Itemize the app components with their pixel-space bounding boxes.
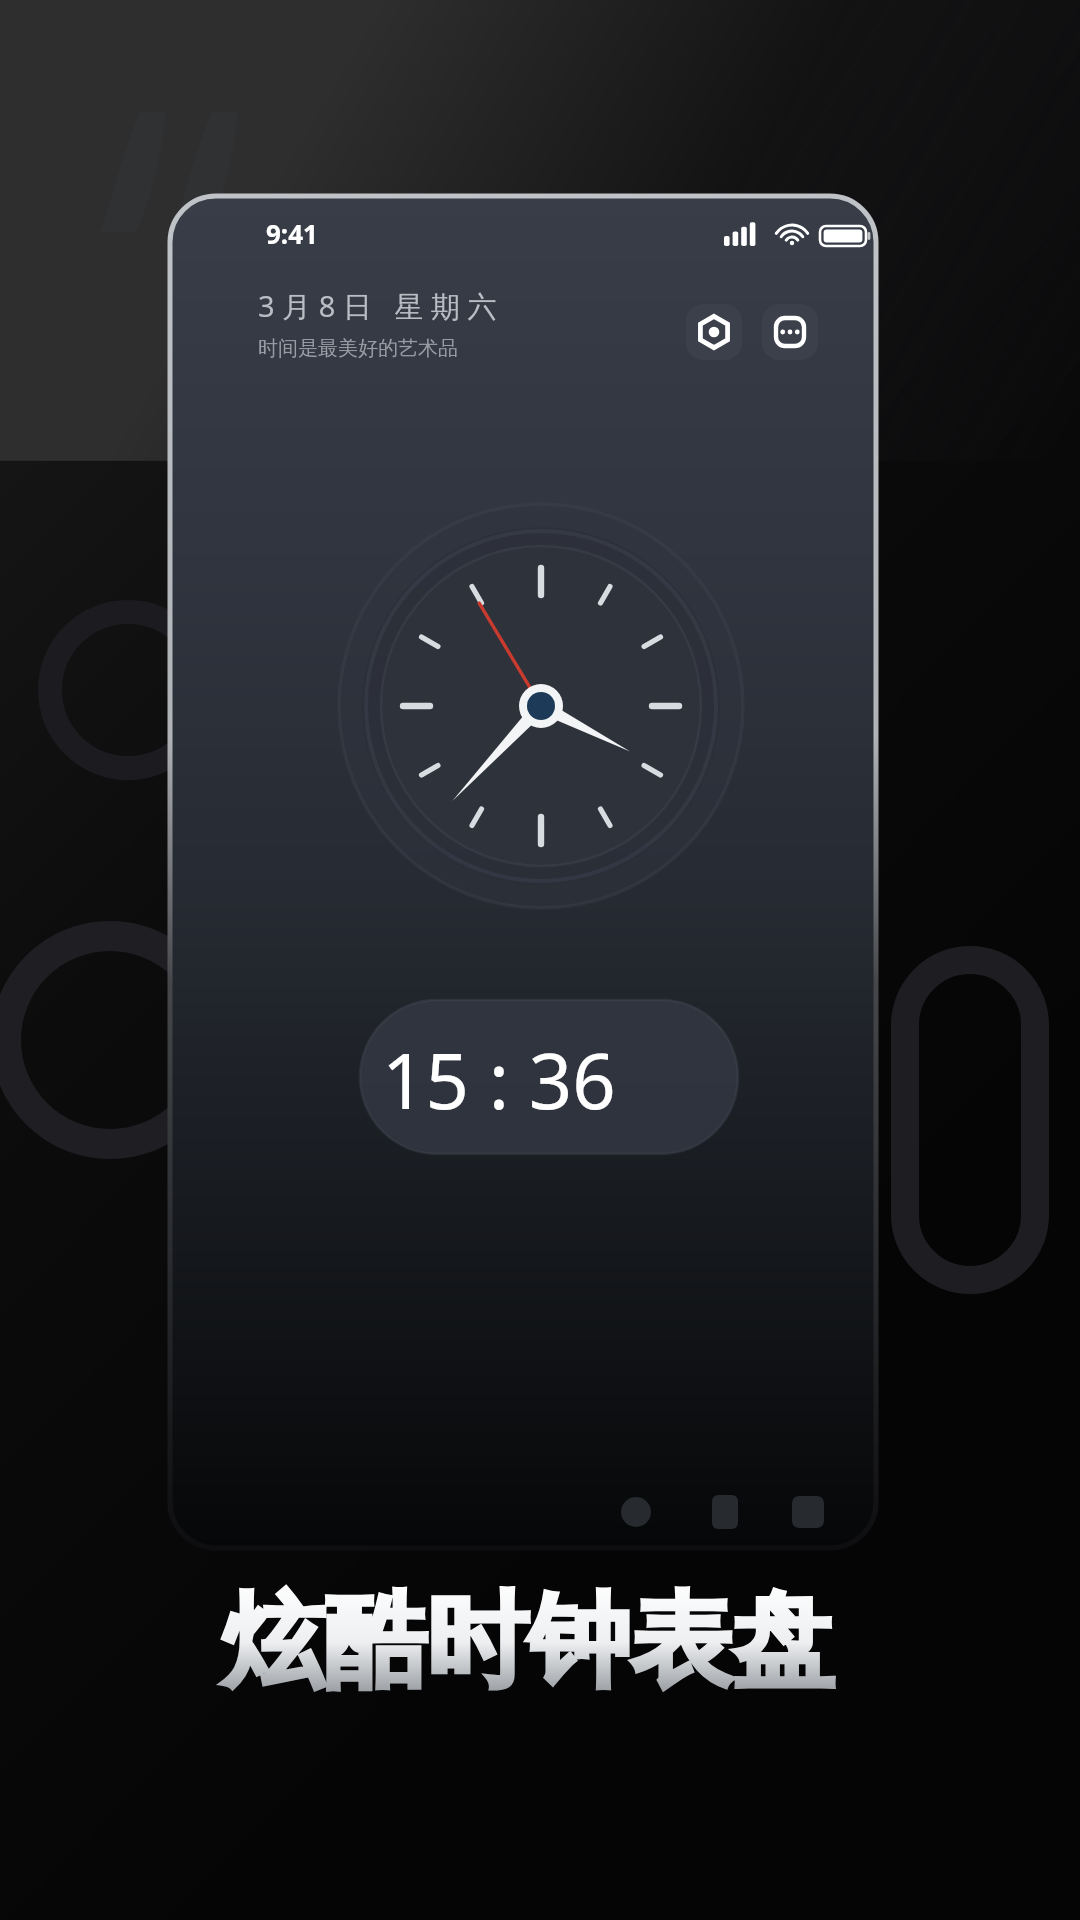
staticText: 炫酷时钟表盘 <box>222 1578 834 1706</box>
staticText: 9:41 <box>266 216 318 251</box>
staticText: 时间是最美好的艺术品 <box>258 336 458 361</box>
button[interactable]: More options <box>762 304 818 360</box>
staticText: 3 月 8 日 星 期 六 <box>258 286 497 326</box>
staticText: 15 : 36 <box>382 1028 616 1132</box>
button[interactable]: Watch face settings <box>686 304 742 360</box>
